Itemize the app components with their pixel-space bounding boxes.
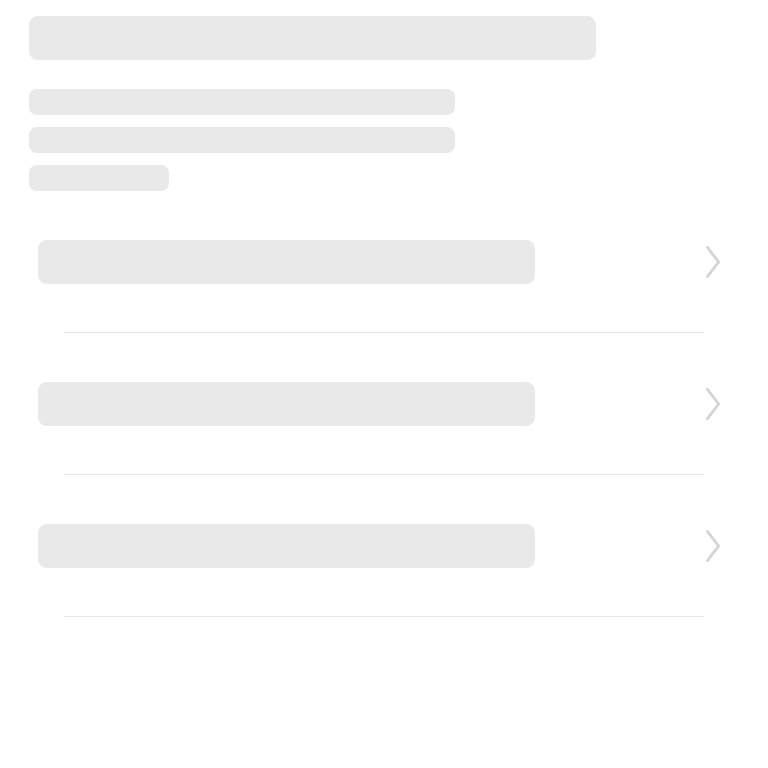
button[interactable]: Loading item [0,230,768,372]
button[interactable]: Loading item [0,372,768,514]
button[interactable]: Loading item [0,514,768,656]
